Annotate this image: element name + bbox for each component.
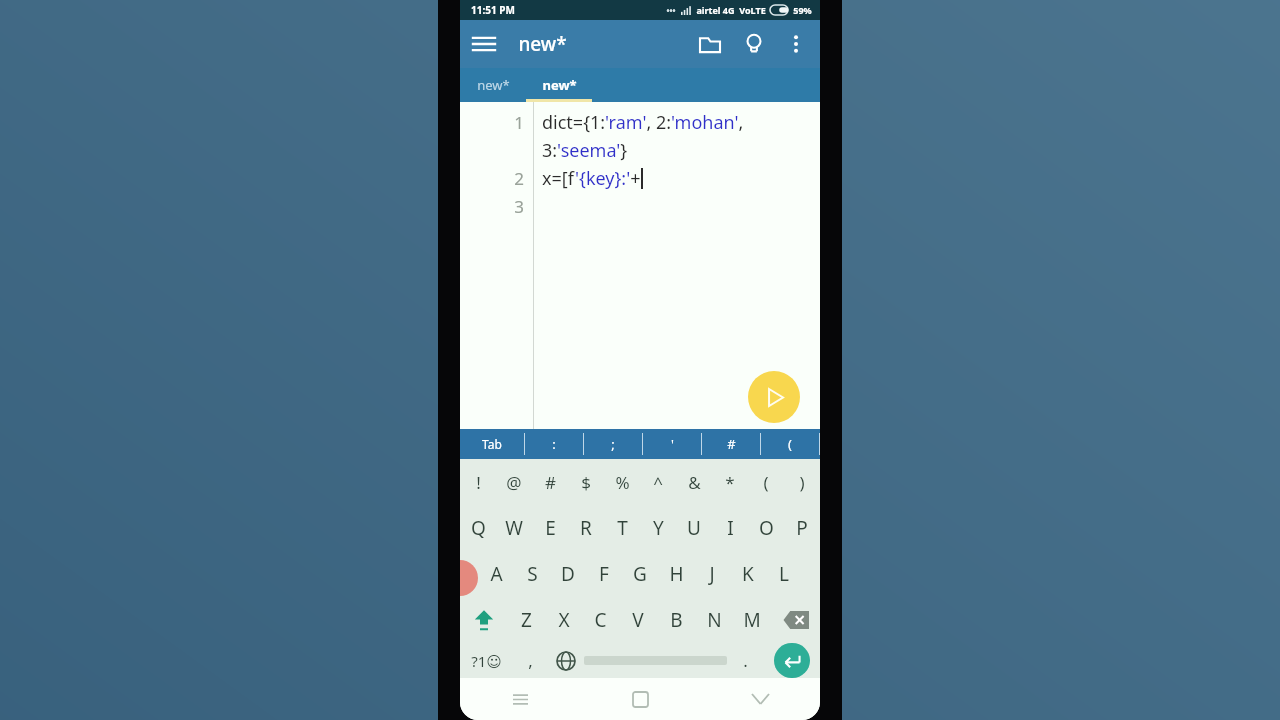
- staticText: P: [796, 515, 808, 541]
- staticText: U: [687, 515, 701, 541]
- button[interactable]: ': [643, 429, 701, 459]
- button[interactable]: !: [460, 459, 496, 505]
- button[interactable]: R: [568, 505, 604, 551]
- staticText: V: [632, 607, 644, 633]
- staticText: :: [552, 435, 556, 453]
- staticText: dict={1:'ram', 2:'mohan',: [542, 110, 744, 135]
- staticText: J: [709, 561, 715, 587]
- button[interactable]: W: [496, 505, 532, 551]
- staticText: W: [505, 515, 523, 541]
- staticText: 3: [514, 195, 524, 218]
- staticText: Q: [471, 515, 486, 541]
- button[interactable]: ,: [512, 643, 548, 678]
- button[interactable]: Hide keyboard: [700, 678, 820, 720]
- button[interactable]: F: [586, 551, 622, 597]
- staticText: (: [788, 435, 792, 453]
- button[interactable]: More options: [776, 24, 816, 64]
- staticText: G: [633, 561, 647, 587]
- button[interactable]: Open navigation menu: [460, 20, 508, 68]
- staticText: 11:51 PM: [471, 3, 515, 17]
- staticText: (: [763, 471, 769, 494]
- staticText: I: [727, 515, 734, 541]
- button[interactable]: Q: [460, 505, 496, 551]
- button[interactable]: Hints: [732, 22, 776, 66]
- button[interactable]: N: [695, 597, 733, 643]
- staticText: R: [580, 515, 592, 541]
- button[interactable]: J: [694, 551, 730, 597]
- button[interactable]: #: [702, 429, 760, 459]
- staticText: 1: [514, 111, 524, 134]
- button[interactable]: *: [712, 459, 748, 505]
- button[interactable]: (: [748, 459, 784, 505]
- button[interactable]: new*: [526, 68, 592, 102]
- button[interactable]: .: [727, 643, 763, 678]
- button[interactable]: ?1☺: [460, 643, 512, 678]
- button[interactable]: L: [766, 551, 802, 597]
- staticText: B: [670, 607, 683, 633]
- staticText: VoLTE: [739, 4, 766, 16]
- button[interactable]: Change language: [548, 643, 584, 678]
- staticText: !: [476, 471, 481, 494]
- button[interactable]: &: [676, 459, 712, 505]
- button[interactable]: Home: [580, 678, 700, 720]
- button[interactable]: @: [496, 459, 532, 505]
- button[interactable]: U: [676, 505, 712, 551]
- button[interactable]: Tab: [460, 429, 524, 459]
- staticText: ,: [528, 649, 533, 672]
- button[interactable]: P: [784, 505, 820, 551]
- staticText: Y: [653, 515, 664, 541]
- button[interactable]: Recent apps: [460, 678, 580, 720]
- staticText: •••: [666, 5, 676, 16]
- button[interactable]: Backspace: [771, 597, 820, 643]
- button[interactable]: new*: [460, 68, 526, 102]
- button[interactable]: I: [712, 505, 748, 551]
- button[interactable]: E: [532, 505, 568, 551]
- button[interactable]: K: [730, 551, 766, 597]
- staticText: ': [671, 435, 674, 453]
- button[interactable]: S: [514, 551, 550, 597]
- button[interactable]: Shift: [460, 597, 508, 643]
- button[interactable]: A: [478, 551, 514, 597]
- button[interactable]: Z: [508, 597, 545, 643]
- button[interactable]: T: [604, 505, 640, 551]
- staticText: H: [669, 561, 684, 587]
- button[interactable]: G: [622, 551, 658, 597]
- staticText: %: [615, 471, 630, 494]
- staticText: K: [742, 561, 754, 587]
- button[interactable]: Open file: [688, 22, 732, 66]
- staticText: L: [779, 561, 789, 587]
- staticText: &: [688, 471, 701, 494]
- button[interactable]: ;: [584, 429, 642, 459]
- staticText: O: [759, 515, 774, 541]
- staticText: .: [743, 649, 748, 672]
- staticText: $: [581, 471, 591, 494]
- button[interactable]: #: [532, 459, 568, 505]
- button[interactable]: M: [733, 597, 771, 643]
- button[interactable]: (: [761, 429, 819, 459]
- button[interactable]: Enter: [763, 643, 820, 678]
- button[interactable]: O: [748, 505, 784, 551]
- button[interactable]: D: [550, 551, 586, 597]
- button[interactable]: :: [525, 429, 583, 459]
- button[interactable]: ^: [640, 459, 676, 505]
- staticText: E: [545, 515, 556, 541]
- button[interactable]: C: [582, 597, 619, 643]
- staticText: ;: [611, 435, 615, 453]
- button[interactable]: X: [545, 597, 582, 643]
- staticText: new*: [542, 76, 577, 94]
- button[interactable]: Y: [640, 505, 676, 551]
- staticText: N: [707, 607, 722, 633]
- button[interactable]: H: [658, 551, 694, 597]
- staticText: D: [561, 561, 575, 587]
- staticText: 2: [514, 167, 524, 190]
- staticText: 3:'seema'}: [542, 138, 628, 163]
- button[interactable]: ): [784, 459, 820, 505]
- button[interactable]: B: [657, 597, 695, 643]
- button[interactable]: Run: [748, 371, 800, 423]
- button[interactable]: $: [568, 459, 604, 505]
- staticText: F: [599, 561, 609, 587]
- button[interactable]: V: [619, 597, 657, 643]
- staticText: S: [527, 561, 538, 587]
- button[interactable]: %: [604, 459, 640, 505]
